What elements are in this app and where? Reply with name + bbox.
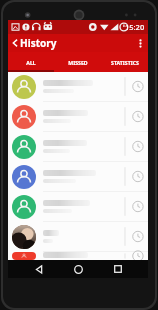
button[interactable]: Back [30, 260, 48, 278]
button[interactable]: Call details [124, 102, 148, 131]
button[interactable]: Home [69, 260, 87, 278]
staticText: History [20, 36, 57, 50]
button[interactable]: Call details [124, 252, 148, 260]
button[interactable]: Call details [8, 252, 148, 260]
button[interactable]: Back to previous screen [8, 34, 63, 52]
button[interactable]: More options [133, 34, 148, 52]
staticText: MISSED [68, 59, 88, 66]
button[interactable]: Call details [124, 222, 148, 251]
staticText: STATISTICS [111, 59, 139, 66]
button[interactable]: Call details [8, 162, 148, 191]
button[interactable]: Call details [8, 222, 148, 251]
button[interactable]: STATISTICS [101, 52, 148, 72]
staticText: ALL [26, 59, 36, 66]
button[interactable]: Call details [124, 72, 148, 101]
button[interactable]: Call details [8, 102, 148, 131]
button[interactable]: Call details [8, 72, 148, 101]
button[interactable]: Call details [8, 132, 148, 161]
button[interactable]: Call details [124, 192, 148, 221]
button[interactable]: MISSED [54, 52, 101, 72]
button[interactable]: Call details [124, 132, 148, 161]
button[interactable]: Call details [124, 162, 148, 191]
button[interactable]: Recent apps [109, 260, 127, 278]
staticText: 15:20 [125, 22, 145, 32]
button[interactable]: ALL [8, 52, 54, 72]
button[interactable]: Call details [8, 192, 148, 221]
